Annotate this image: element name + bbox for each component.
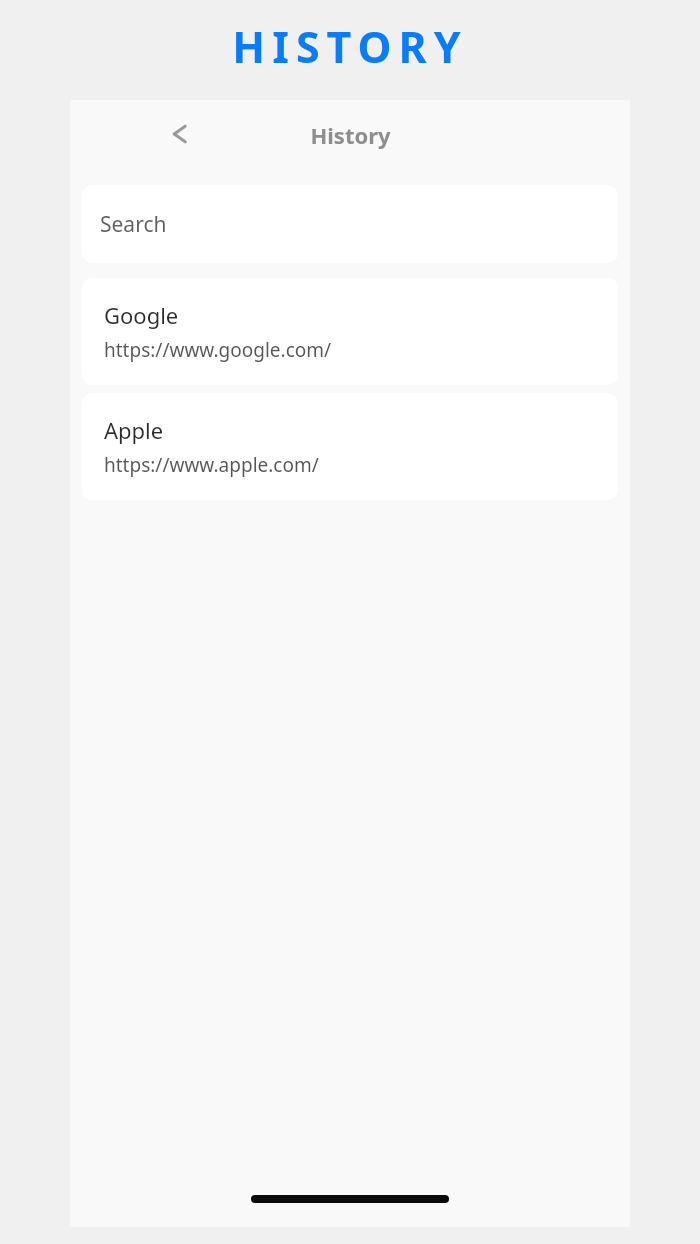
button[interactable]: Apple [82,393,618,500]
staticText: History [310,120,391,150]
staticText: https://www.apple.com/ [104,452,319,478]
staticText: Apple [104,415,164,445]
button[interactable]: Back [154,108,206,160]
button[interactable]: Search [82,185,618,263]
button[interactable]: Google [82,278,618,385]
staticText: Google [104,300,179,330]
staticText: HISTORY [232,17,468,76]
staticText: Search [100,210,167,239]
staticText: https://www.google.com/ [104,337,332,363]
